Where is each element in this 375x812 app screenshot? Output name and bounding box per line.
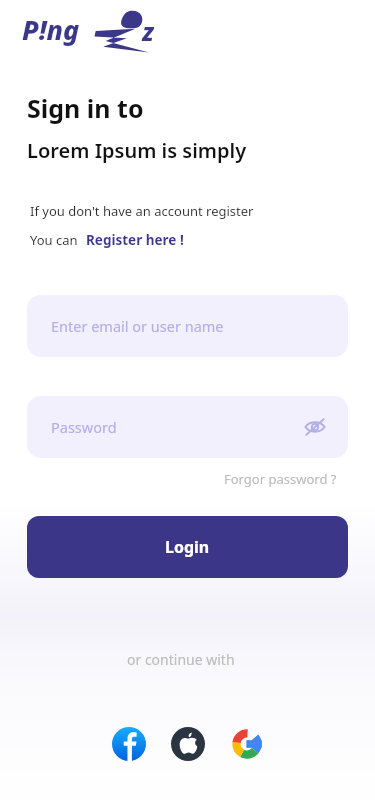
staticText: z xyxy=(142,14,154,48)
staticText: P!ng xyxy=(22,11,80,48)
button[interactable]: Login xyxy=(27,516,348,578)
staticText: Password xyxy=(51,417,117,437)
button[interactable]: Enter email or user name xyxy=(27,295,348,357)
staticText: Register here ! xyxy=(86,231,184,249)
staticText: or continue with xyxy=(127,650,235,669)
button[interactable]: Continue with Apple xyxy=(168,724,208,764)
staticText: Enter email or user name xyxy=(51,316,224,336)
button[interactable]: Show password xyxy=(300,412,330,442)
staticText: Sign in to xyxy=(27,91,144,125)
staticText: If you don't have an account register xyxy=(30,202,254,220)
button[interactable]: Continue with Google xyxy=(227,724,267,764)
button[interactable]: Continue with Facebook xyxy=(109,724,149,764)
staticText: Login xyxy=(165,536,210,558)
button[interactable]: Password xyxy=(27,396,348,458)
staticText: Forgor password ? xyxy=(224,470,337,488)
staticText: Lorem Ipsum is simply xyxy=(27,137,247,164)
button[interactable]: Forgor password ? xyxy=(224,470,337,488)
button[interactable]: Register here ! xyxy=(86,231,184,249)
staticText: You can xyxy=(30,231,78,249)
